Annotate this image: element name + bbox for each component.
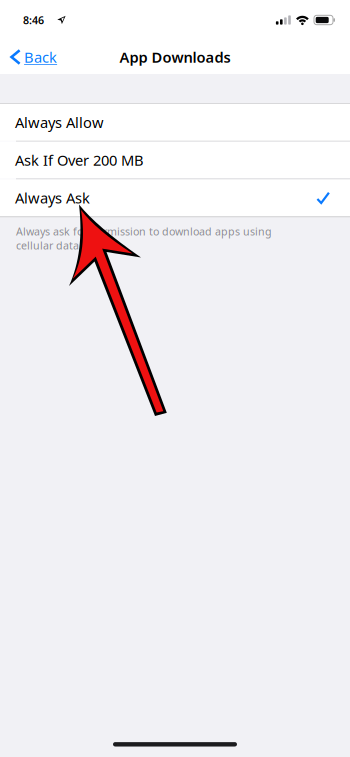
button[interactable]: Always Ask: [0, 179, 350, 216]
staticText: Always ask for permission to download ap…: [16, 224, 272, 252]
staticText: Always Allow: [15, 113, 104, 132]
button[interactable]: Always Allow: [0, 104, 350, 141]
staticText: Back: [24, 47, 57, 67]
staticText: App Downloads: [119, 47, 230, 67]
button[interactable]: Ask If Over 200 MB: [0, 142, 350, 179]
staticText: Ask If Over 200 MB: [15, 150, 144, 170]
staticText: Always Ask: [15, 188, 90, 208]
staticText: 8:46: [23, 13, 44, 27]
button[interactable]: Back: [0, 40, 65, 74]
